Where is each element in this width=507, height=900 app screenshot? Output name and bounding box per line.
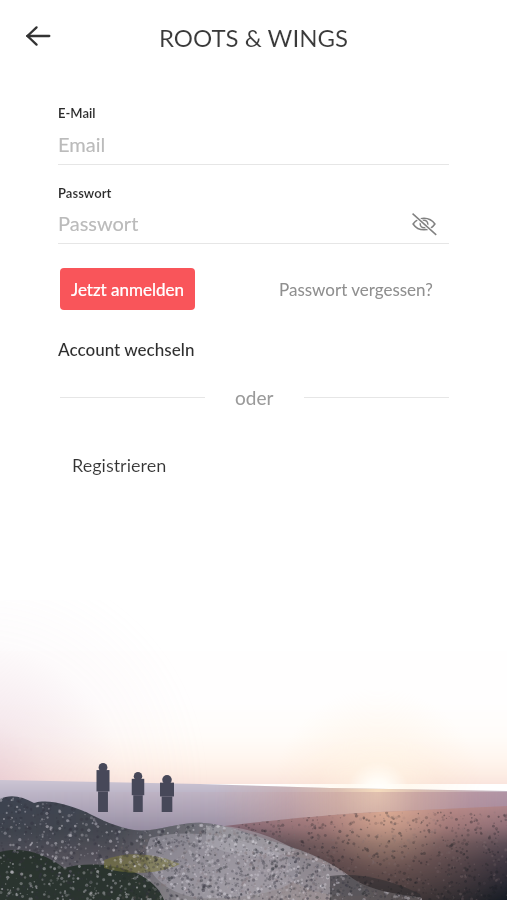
staticText: Jetzt anmelden (71, 279, 184, 299)
button[interactable]: Account wechseln (58, 335, 195, 363)
staticText: Registrieren (72, 454, 167, 476)
button[interactable]: Passwort vergessen? (279, 268, 433, 310)
staticText: Account wechseln (58, 339, 195, 359)
staticText: Email (58, 132, 106, 156)
button[interactable]: Back (16, 14, 59, 57)
button[interactable]: Registrieren (62, 444, 176, 486)
staticText: E-Mail (58, 105, 96, 121)
staticText: Passwort vergessen? (279, 279, 433, 299)
staticText: ROOTS & WINGS (0, 23, 507, 52)
button[interactable]: Show password (409, 209, 439, 239)
staticText: Passwort (58, 211, 139, 235)
staticText: oder (235, 386, 274, 408)
button[interactable]: Jetzt anmelden (60, 268, 195, 310)
staticText: Passwort (58, 185, 112, 201)
